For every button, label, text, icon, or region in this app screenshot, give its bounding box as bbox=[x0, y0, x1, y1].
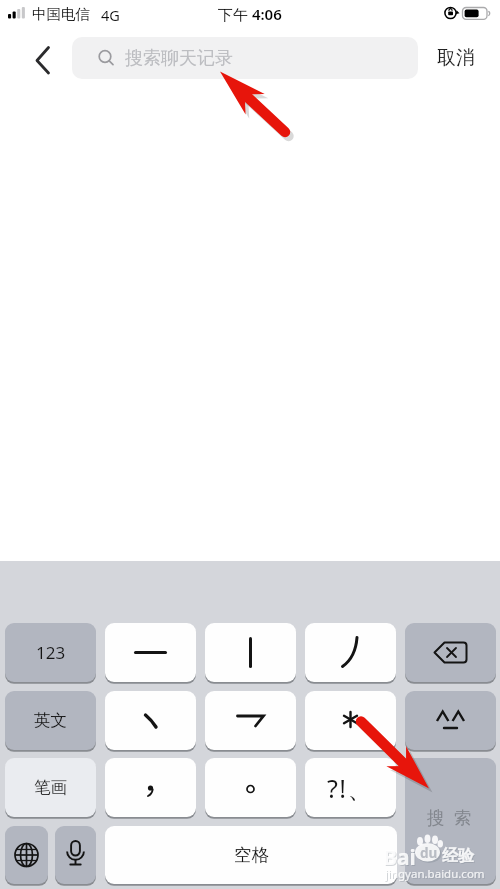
staticText: 4G bbox=[101, 5, 120, 25]
button[interactable]: 搜 索 bbox=[405, 758, 496, 884]
staticText: 取消 bbox=[437, 46, 475, 70]
button[interactable] bbox=[305, 691, 396, 750]
staticText: Bai bbox=[383, 843, 416, 872]
button[interactable] bbox=[105, 691, 196, 750]
staticText: 空格 bbox=[234, 844, 269, 866]
button[interactable]: 英文 bbox=[5, 691, 96, 750]
button[interactable]: 搜索聊天记录 bbox=[72, 37, 418, 79]
button[interactable] bbox=[55, 826, 96, 884]
button[interactable] bbox=[105, 623, 196, 682]
button[interactable] bbox=[205, 623, 296, 682]
staticText: 下午 4:06 bbox=[218, 4, 282, 24]
staticText: 经验 bbox=[443, 847, 475, 867]
staticText: jingyan.baidu.com bbox=[386, 867, 486, 883]
button[interactable] bbox=[205, 691, 296, 750]
staticText: 搜索聊天记录 bbox=[125, 47, 233, 70]
staticText: du bbox=[420, 844, 438, 862]
button[interactable]: 取消 bbox=[425, 37, 487, 79]
staticText: ?!、 bbox=[327, 771, 375, 805]
staticText: 123 bbox=[36, 641, 66, 664]
button[interactable]: 笔画 bbox=[5, 758, 96, 817]
staticText: 英文 bbox=[34, 710, 67, 731]
staticText: Bai bbox=[384, 844, 417, 873]
button[interactable] bbox=[5, 826, 48, 884]
staticText: 中国电信 bbox=[32, 5, 90, 23]
button[interactable]: 123 bbox=[5, 623, 96, 682]
button[interactable] bbox=[405, 623, 496, 682]
staticText: 笔画 bbox=[34, 777, 67, 798]
staticText: 搜 索 bbox=[427, 805, 475, 829]
staticText: jingyan.baidu.com bbox=[385, 866, 485, 882]
button[interactable] bbox=[30, 40, 60, 80]
staticText: 经验 bbox=[442, 846, 474, 866]
button[interactable]: ?!、 bbox=[305, 758, 396, 817]
button[interactable] bbox=[105, 758, 196, 817]
button[interactable] bbox=[205, 758, 296, 817]
button[interactable] bbox=[405, 691, 496, 750]
button[interactable] bbox=[305, 623, 396, 682]
button[interactable]: 空格 bbox=[105, 826, 397, 884]
